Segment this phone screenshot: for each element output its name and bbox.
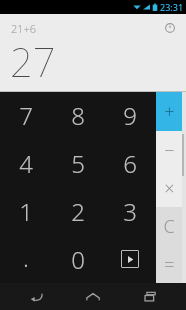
button[interactable]: 7 bbox=[0, 92, 52, 139]
button[interactable]: 1 bbox=[0, 187, 52, 235]
button[interactable]: 2 bbox=[52, 187, 104, 235]
staticText: + bbox=[164, 99, 175, 124]
button[interactable]: Back bbox=[17, 283, 57, 310]
staticText: = bbox=[164, 252, 175, 277]
button[interactable]: 6 bbox=[104, 139, 156, 187]
button[interactable]: × bbox=[156, 169, 182, 207]
button[interactable]: − bbox=[156, 131, 182, 169]
button[interactable]: Home bbox=[73, 283, 113, 310]
staticText: 7 bbox=[19, 99, 33, 132]
staticText: 3 bbox=[123, 195, 137, 228]
button[interactable]: C bbox=[156, 207, 182, 245]
staticText: 23:31 bbox=[160, 1, 184, 13]
button[interactable]: 8 bbox=[52, 92, 104, 139]
staticText: × bbox=[164, 176, 175, 201]
button[interactable]: More bbox=[104, 235, 156, 283]
staticText: 27 bbox=[10, 34, 56, 88]
staticText: C bbox=[163, 214, 175, 239]
other: More bbox=[121, 250, 139, 268]
staticText: 9 bbox=[123, 99, 137, 132]
button[interactable]: Recents bbox=[130, 283, 170, 310]
button[interactable]: = bbox=[156, 245, 182, 283]
staticText: 2 bbox=[71, 195, 85, 228]
staticText: 4 bbox=[19, 147, 33, 180]
staticText: 5 bbox=[71, 147, 85, 180]
button[interactable]: . bbox=[0, 235, 52, 283]
button[interactable]: 3 bbox=[104, 187, 156, 235]
button[interactable]: 4 bbox=[0, 139, 52, 187]
button[interactable]: History bbox=[162, 20, 178, 36]
staticText: 1 bbox=[19, 195, 33, 228]
staticText: 0 bbox=[71, 243, 85, 276]
staticText: 8 bbox=[71, 99, 85, 132]
button[interactable]: 5 bbox=[52, 139, 104, 187]
staticText: 6 bbox=[123, 147, 137, 180]
staticText: − bbox=[164, 138, 175, 163]
staticText: 21+6 bbox=[11, 21, 37, 36]
button[interactable]: 9 bbox=[104, 92, 156, 139]
button[interactable]: 0 bbox=[52, 235, 104, 283]
button[interactable]: + bbox=[156, 92, 182, 131]
staticText: . bbox=[23, 241, 29, 274]
